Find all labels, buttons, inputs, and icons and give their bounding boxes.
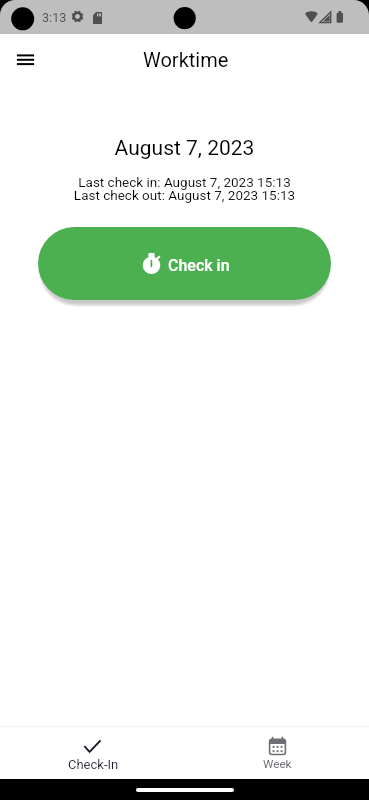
staticText: Check-In <box>68 757 119 772</box>
staticText: 3:13 <box>42 10 67 25</box>
staticText: Worktime <box>143 48 229 71</box>
button[interactable]: Open navigation menu <box>1 34 49 82</box>
staticText: August 7, 2023 <box>0 136 369 161</box>
staticText: Week <box>263 757 292 771</box>
button[interactable]: Week tab <box>185 727 369 779</box>
staticText: Last check in: August 7, 2023 15:13 <box>0 174 369 190</box>
staticText: Last check out: August 7, 2023 15:13 <box>0 187 369 203</box>
staticText: Check in <box>168 256 230 275</box>
button[interactable]: Check in <box>38 227 331 300</box>
button[interactable]: Check-In tab <box>0 727 185 779</box>
